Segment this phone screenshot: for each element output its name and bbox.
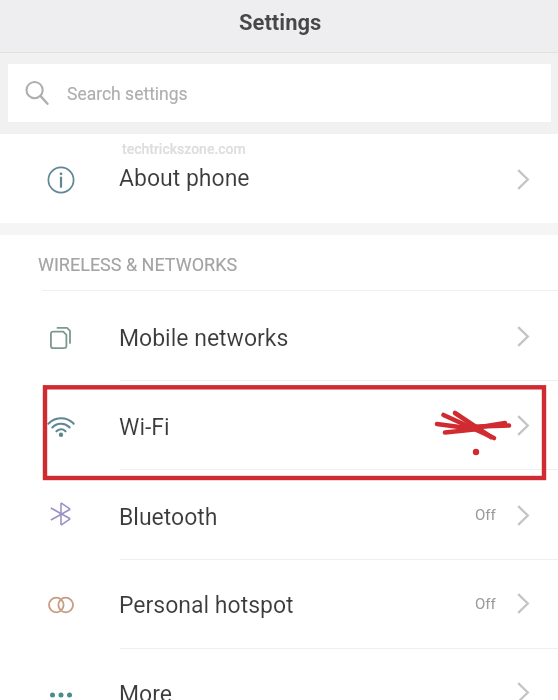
button[interactable]: Personal hotspot (0, 561, 558, 650)
staticText: Settings (239, 10, 322, 36)
button[interactable]: About phone (0, 134, 558, 223)
staticText: Off (475, 506, 496, 524)
button[interactable]: Mobile networks (0, 293, 558, 383)
staticText: About phone (119, 165, 250, 192)
other: More (517, 682, 529, 700)
button[interactable]: Search settings (8, 64, 551, 122)
staticText: Wi-Fi (119, 414, 170, 441)
staticText: WIRELESS & NETWORKS (38, 254, 238, 275)
other: About phone (517, 169, 529, 190)
staticText: Search settings (67, 84, 188, 105)
button[interactable]: Bluetooth (0, 472, 558, 562)
staticText: Personal hotspot (119, 592, 294, 619)
other: Wi-Fi (517, 415, 529, 436)
button[interactable]: More (0, 650, 558, 700)
staticText: More (119, 681, 172, 700)
other: Mobile networks (517, 326, 529, 347)
staticText: Bluetooth (119, 504, 218, 531)
other: Bluetooth Off (517, 505, 529, 526)
other: Personal hotspot Off (517, 593, 529, 614)
button[interactable]: Wi-Fi (0, 383, 558, 472)
button[interactable]: Settings (0, 0, 558, 52)
staticText: techtrickszone.com (122, 141, 246, 157)
staticText: Off (475, 595, 496, 613)
staticText: Mobile networks (119, 325, 289, 352)
